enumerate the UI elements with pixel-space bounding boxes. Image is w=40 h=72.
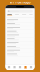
button[interactable]: Category tab bbox=[22, 14, 26, 16]
staticText: MY PORTFOLIO bbox=[9, 1, 30, 4]
button[interactable]: Category tab bbox=[7, 14, 12, 16]
button[interactable]: Tab bbox=[28, 66, 34, 69]
button[interactable]: List item bbox=[5, 22, 35, 26]
button[interactable]: List item bbox=[5, 18, 35, 22]
button[interactable]: List item bbox=[5, 34, 35, 37]
button[interactable]: List item bbox=[5, 53, 35, 56]
button[interactable]: Category tab bbox=[15, 14, 19, 16]
button[interactable]: Category tab bbox=[29, 14, 33, 16]
button[interactable]: List item bbox=[5, 30, 35, 34]
button[interactable]: List item bbox=[5, 37, 35, 41]
button[interactable]: Selected tab bbox=[23, 66, 28, 69]
button[interactable]: Tab bbox=[17, 66, 23, 69]
button[interactable]: List item bbox=[5, 49, 35, 53]
button[interactable]: Tab bbox=[6, 66, 12, 69]
button[interactable]: Search bbox=[7, 10, 33, 13]
button[interactable]: List item bbox=[5, 45, 35, 49]
button[interactable]: List item bbox=[5, 41, 35, 45]
button[interactable]: List item bbox=[5, 26, 35, 30]
button[interactable]: Tab bbox=[12, 66, 17, 69]
